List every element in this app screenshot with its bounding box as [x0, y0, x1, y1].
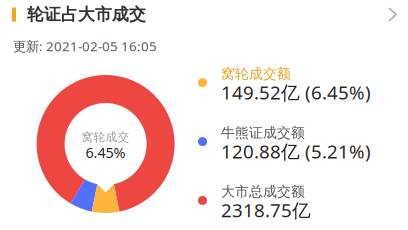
staticText: 120.88亿 (5.21%) [221, 138, 371, 164]
staticText: 6.45% [86, 143, 126, 162]
staticText: 窝轮成交 [82, 130, 130, 145]
staticText: 149.52亿 (6.45%) [221, 80, 371, 105]
staticText: 窝轮成交额 [221, 65, 291, 83]
button[interactable]: 轮证占大市成交 — 查看详情 [0, 0, 408, 28]
staticText: 更新: 2021-02-05 16:05 [13, 37, 157, 55]
staticText: 大市总成交额 [221, 183, 305, 200]
staticText: 2318.75亿 [221, 197, 311, 223]
staticText: 牛熊证成交额 [221, 124, 305, 142]
staticText: 轮证占大市成交 [27, 4, 146, 25]
